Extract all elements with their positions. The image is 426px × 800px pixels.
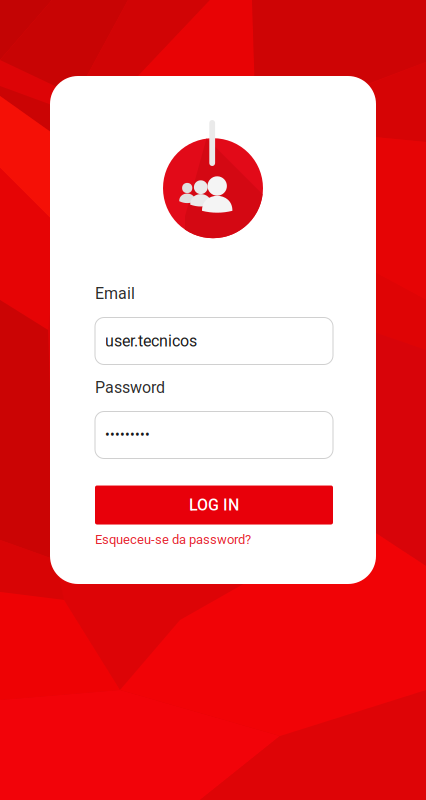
button[interactable]: LOG IN bbox=[95, 485, 333, 524]
staticText: Email bbox=[95, 284, 135, 303]
staticText: LOG IN bbox=[189, 496, 239, 514]
staticText: Password bbox=[95, 378, 165, 397]
button[interactable]: Esqueceu-se da password? bbox=[95, 529, 333, 549]
staticText: user.tecnicos bbox=[105, 332, 197, 350]
staticText: ••••••••• bbox=[105, 427, 150, 443]
staticText: Esqueceu-se da password? bbox=[95, 532, 251, 547]
